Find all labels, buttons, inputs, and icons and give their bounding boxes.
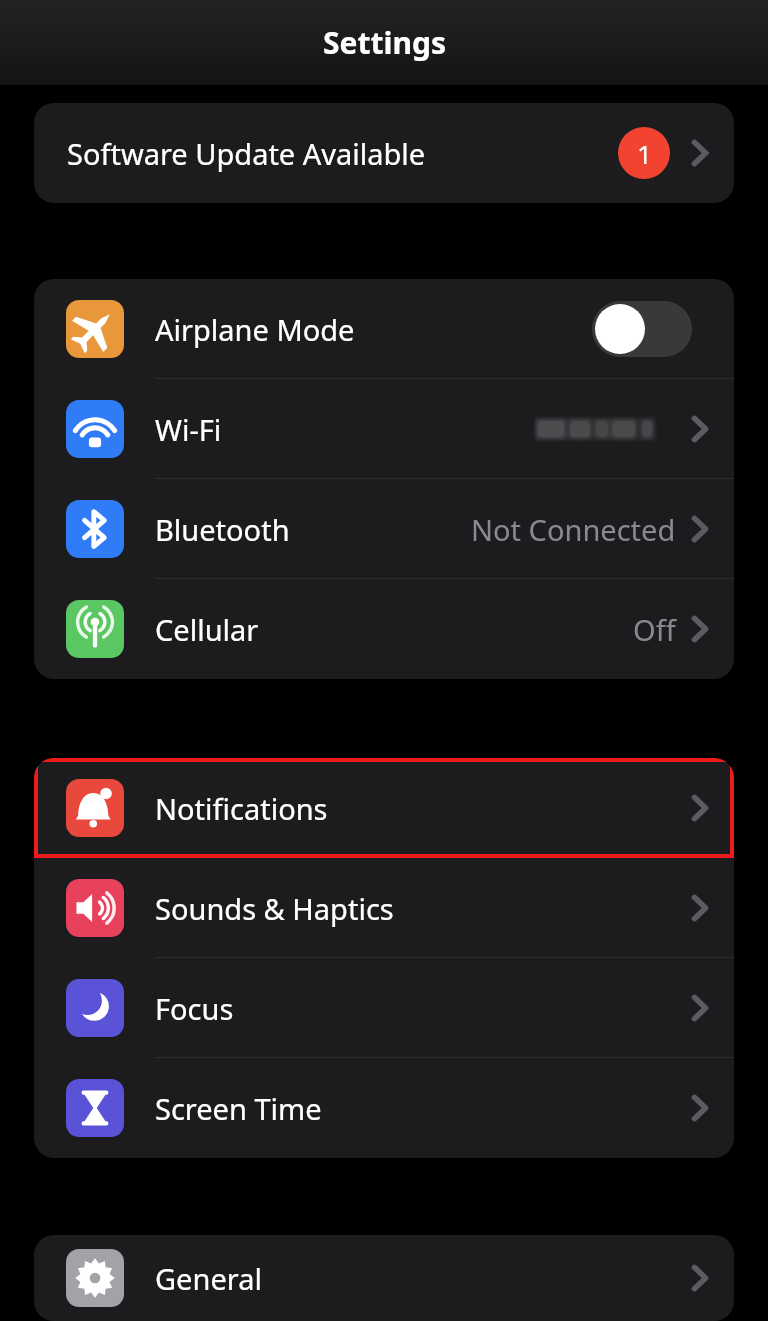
button[interactable]: Software Update Available [34,103,734,203]
button[interactable]: Screen Time [34,1058,734,1158]
staticText: Focus [155,989,234,1028]
button[interactable]: General [34,1235,734,1321]
staticText: Software Update Available [67,134,426,173]
staticText: General [155,1259,262,1298]
staticText: Cellular [155,610,259,649]
button[interactable]: Wi-Fi [34,379,734,479]
button[interactable]: Cellular [34,579,734,679]
button[interactable]: Bluetooth [34,479,734,579]
staticText: Screen Time [155,1089,322,1128]
button[interactable]: Focus [34,958,734,1058]
staticText: Bluetooth [155,510,290,549]
staticText: Not Connected [471,510,676,549]
staticText: Settings [323,22,446,63]
staticText: Notifications [155,789,328,828]
staticText: 1 [637,136,652,171]
staticText: Sounds & Haptics [155,889,394,928]
staticText: Wi-Fi [155,410,222,449]
button[interactable]: Airplane Mode toggle, off [592,301,692,357]
button[interactable]: Notifications [34,758,734,858]
staticText: Off [633,610,676,649]
button[interactable]: Airplane Mode [34,279,734,379]
staticText: Airplane Mode [155,310,355,349]
button[interactable]: Sounds & Haptics [34,858,734,958]
